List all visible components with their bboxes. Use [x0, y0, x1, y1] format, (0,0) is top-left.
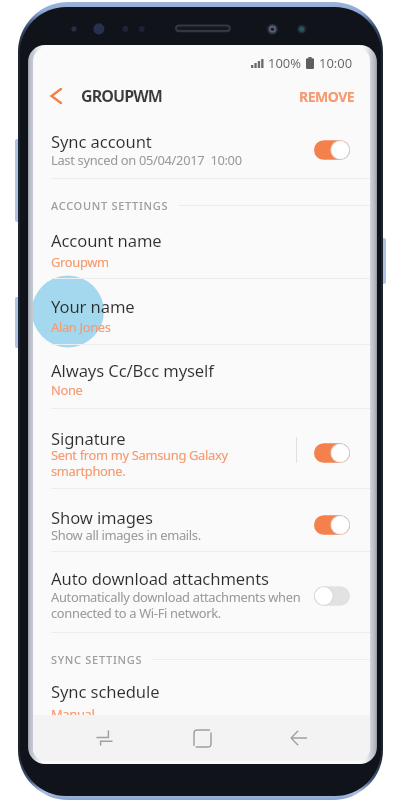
staticText: Sync schedule [51, 680, 160, 703]
button[interactable] [33, 408, 370, 486]
button[interactable]: Auto download attachments toggle [308, 581, 356, 611]
staticText: GROUPWM [81, 85, 163, 107]
staticText: 10:00 [319, 54, 353, 72]
staticText: Groupwm [51, 253, 109, 271]
staticText: Sent from my Samsung Galaxy smartphone. [51, 446, 228, 480]
button[interactable]: Back [275, 715, 323, 761]
button[interactable] [33, 278, 370, 340]
staticText: Show images [51, 506, 153, 529]
button[interactable] [33, 668, 370, 714]
staticText: Sync account [51, 130, 152, 153]
staticText: Alan Jones [51, 318, 111, 336]
staticText: REMOVE [299, 87, 355, 106]
staticText: 100% [268, 54, 302, 72]
staticText: Show all images in emails. [51, 526, 201, 544]
button[interactable]: Home [178, 715, 226, 761]
staticText: ACCOUNT SETTINGS [51, 198, 169, 213]
button[interactable] [33, 551, 370, 631]
button[interactable]: Show images toggle [308, 510, 356, 540]
button[interactable]: Recent apps [80, 715, 128, 761]
button[interactable]: Sync account toggle [308, 135, 356, 165]
button[interactable]: Back [35, 74, 75, 118]
staticText: SYNC SETTINGS [51, 652, 143, 667]
staticText: Signature [51, 427, 126, 450]
button[interactable] [33, 344, 370, 406]
staticText: None [51, 381, 83, 399]
staticText: Automatically download attachments when … [51, 588, 301, 622]
button[interactable] [33, 120, 370, 178]
staticText: Manual [51, 705, 95, 723]
button[interactable] [33, 216, 370, 278]
button[interactable] [33, 488, 370, 550]
button[interactable]: REMOVE [284, 75, 370, 118]
staticText: Your name [51, 295, 135, 318]
staticText: Account name [51, 229, 162, 252]
button[interactable]: Signature toggle [308, 438, 356, 468]
staticText: Last synced on 05/04/2017 10:00 [51, 151, 242, 169]
staticText: Always Cc/Bcc myself [51, 359, 214, 382]
staticText: Auto download attachments [51, 567, 269, 590]
